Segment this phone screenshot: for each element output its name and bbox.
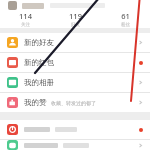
staticText: 新的好友: [24, 38, 54, 47]
button[interactable]: 114: [0, 11, 50, 28]
button[interactable]: [0, 120, 150, 139]
staticText: 新的红包: [24, 58, 54, 67]
button[interactable]: 61: [100, 11, 150, 28]
button[interactable]: 新的红包: [0, 53, 150, 72]
staticText: 61: [121, 11, 130, 21]
button[interactable]: 119: [50, 11, 100, 28]
staticText: 好友: [71, 22, 80, 28]
staticText: 关注: [21, 22, 30, 28]
button[interactable]: [0, 0, 150, 11]
staticText: 我的相册: [24, 78, 54, 87]
button[interactable]: 我的相册: [0, 73, 150, 92]
button[interactable]: [0, 140, 150, 150]
staticText: 粉丝: [121, 22, 130, 28]
button[interactable]: 我的赞: [0, 93, 150, 112]
staticText: 114: [19, 11, 32, 21]
staticText: 我的赞: [24, 98, 47, 107]
staticText: 收藏、转发过的都了: [51, 100, 96, 106]
button[interactable]: 新的好友: [0, 33, 150, 52]
staticText: 119: [69, 11, 82, 21]
